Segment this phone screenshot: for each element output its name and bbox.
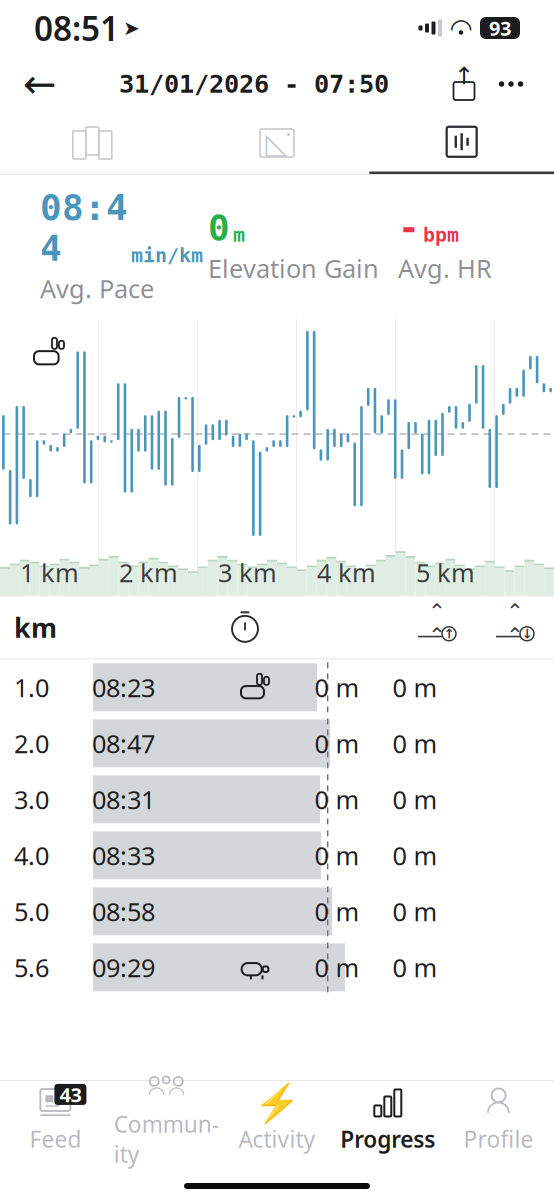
staticText: ⌃⌃ bbox=[506, 599, 524, 647]
button[interactable]: 2.0 bbox=[0, 715, 554, 771]
staticText: ◠ bbox=[449, 13, 472, 43]
staticText: 1 km bbox=[20, 556, 79, 589]
staticText: 31/01/2026 - 07:50 bbox=[119, 70, 389, 98]
staticText: ◠ bbox=[168, 1082, 185, 1105]
button[interactable]: ⚡ bbox=[222, 1087, 332, 1153]
staticText: 0 m bbox=[314, 670, 359, 704]
button[interactable]: 4.0 bbox=[0, 827, 554, 883]
staticText: Elevation Gain bbox=[208, 251, 379, 285]
button[interactable]: Back bbox=[14, 58, 66, 110]
staticText: 5.6 bbox=[14, 950, 49, 984]
button[interactable]: 5.0 bbox=[0, 883, 554, 939]
staticText: 0 m bbox=[392, 838, 437, 872]
staticText: 0 m bbox=[314, 838, 359, 872]
staticText: 0 m bbox=[314, 950, 359, 984]
staticText: Community bbox=[114, 1109, 219, 1169]
staticText: 0 m bbox=[392, 670, 437, 704]
staticText: 0 m bbox=[314, 782, 359, 816]
button[interactable]: Charts bbox=[369, 112, 554, 174]
button[interactable]: 3.0 bbox=[0, 771, 554, 827]
staticText: 4.0 bbox=[14, 838, 49, 872]
staticText: 08:33 bbox=[92, 838, 155, 872]
staticText: ➤ bbox=[123, 17, 140, 39]
staticText: - bbox=[398, 207, 420, 248]
staticText: 0 m bbox=[314, 894, 359, 928]
staticText: Activity bbox=[238, 1124, 315, 1154]
staticText: 4 km bbox=[317, 556, 376, 589]
staticText: ◠ bbox=[148, 1082, 165, 1105]
staticText: bpm bbox=[423, 224, 459, 246]
staticText: 3.0 bbox=[14, 782, 49, 816]
button[interactable]: 5.6 bbox=[0, 939, 554, 995]
staticText: Avg. HR bbox=[398, 251, 492, 285]
staticText: 1.0 bbox=[14, 670, 49, 704]
staticText: km bbox=[14, 610, 57, 645]
staticText: 0 m bbox=[392, 726, 437, 760]
staticText: m bbox=[233, 224, 245, 246]
button[interactable]: Map bbox=[0, 112, 185, 174]
staticText: 09:29 bbox=[92, 950, 155, 984]
staticText: 2 km bbox=[119, 556, 178, 589]
button[interactable]: More options bbox=[486, 62, 536, 106]
staticText: ↑ bbox=[454, 62, 474, 90]
staticText: 3 km bbox=[218, 556, 277, 589]
staticText: min/km bbox=[131, 244, 203, 267]
staticText: ↓ bbox=[521, 626, 532, 641]
staticText: 43 bbox=[59, 1081, 81, 1108]
staticText: Progress bbox=[340, 1124, 435, 1154]
button[interactable]: Photos bbox=[185, 112, 369, 174]
staticText: 0 m bbox=[392, 782, 437, 816]
staticText: ⚡ bbox=[254, 1082, 300, 1124]
staticText: 08:47 bbox=[92, 726, 155, 760]
staticText: 08:31 bbox=[92, 782, 155, 816]
staticText: ↑ bbox=[443, 626, 454, 641]
button[interactable]: 43 bbox=[0, 1087, 111, 1153]
button[interactable]: Share bbox=[442, 62, 486, 106]
staticText: 08:58 bbox=[92, 894, 155, 928]
staticText: 08:51 bbox=[34, 6, 119, 50]
staticText: Avg. Pace bbox=[40, 272, 154, 305]
staticText: 5 km bbox=[416, 556, 475, 589]
staticText: Feed bbox=[29, 1124, 81, 1154]
staticText: 08:23 bbox=[92, 670, 155, 704]
button[interactable]: ◠ bbox=[443, 1087, 554, 1153]
staticText: Profile bbox=[464, 1124, 534, 1154]
button[interactable]: 1.0 bbox=[0, 659, 554, 715]
staticText: 0 m bbox=[314, 726, 359, 760]
staticText: 0 bbox=[208, 207, 230, 248]
staticText: 5.0 bbox=[14, 894, 49, 928]
staticText: ◺ bbox=[265, 126, 288, 160]
staticText: ⌃⌃ bbox=[428, 599, 446, 647]
staticText: 93 bbox=[489, 15, 511, 41]
staticText: 0 m bbox=[392, 894, 437, 928]
button[interactable]: Progress bbox=[332, 1087, 443, 1153]
staticText: ← bbox=[23, 61, 57, 107]
staticText: 08:44 bbox=[40, 187, 128, 269]
staticText: 0 m bbox=[392, 950, 437, 984]
staticText: ◠ bbox=[486, 1094, 512, 1127]
staticText: 2.0 bbox=[14, 726, 49, 760]
button[interactable]: ◠ bbox=[111, 1087, 222, 1153]
